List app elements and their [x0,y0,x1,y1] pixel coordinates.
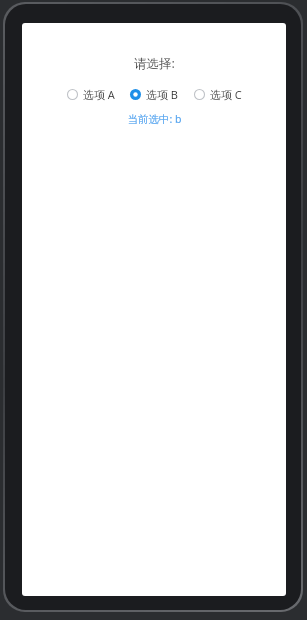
other: Unselected option [194,89,205,100]
staticText: 请选择: [134,55,175,72]
other: Unselected option [67,89,78,100]
button[interactable]: Selected option [126,85,183,104]
staticText: 选项 B [146,87,179,102]
button[interactable]: Unselected option [190,85,246,104]
staticText: 选项 C [210,87,242,102]
other: Selected option [130,89,141,100]
button[interactable]: Unselected option [63,85,119,104]
staticText: 选项 A [83,87,115,102]
staticText: 当前选中: b [127,112,182,126]
